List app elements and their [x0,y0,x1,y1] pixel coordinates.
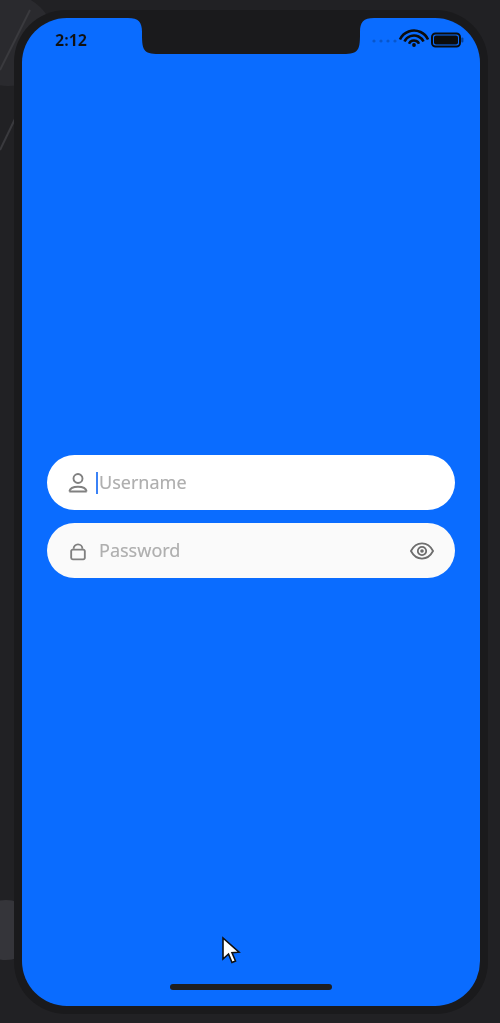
button[interactable]: Password [47,523,455,578]
button[interactable]: Show password [407,536,437,566]
button[interactable]: Username [47,455,455,510]
staticText: Username [99,470,187,495]
staticText: Password [99,538,407,563]
staticText: 2:12 [55,29,87,51]
